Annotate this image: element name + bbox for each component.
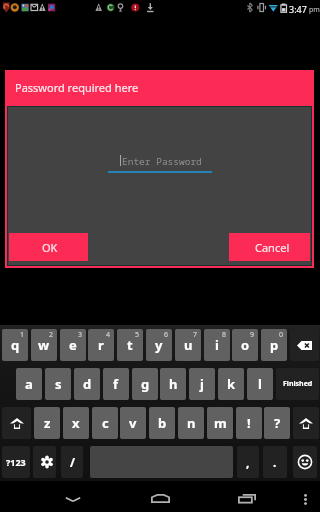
staticText: b (158, 414, 167, 432)
button[interactable]: w (31, 329, 57, 361)
staticText: i (215, 336, 219, 354)
button[interactable]: i (204, 329, 230, 361)
staticText: x (72, 414, 80, 432)
button[interactable]: c (92, 407, 118, 439)
button[interactable]: p (261, 329, 287, 361)
button[interactable]: g (132, 368, 158, 400)
button[interactable]: Finished (276, 368, 319, 400)
staticText: OK (42, 240, 58, 255)
staticText: r (98, 336, 104, 354)
staticText: 9 (250, 330, 255, 340)
staticText: s (55, 375, 62, 393)
staticText: 2 (49, 330, 54, 340)
button[interactable]: z (34, 407, 60, 439)
button[interactable]: e (60, 329, 86, 361)
staticText: z (44, 414, 51, 432)
staticText: / (70, 454, 75, 470)
staticText: q (11, 336, 20, 354)
staticText: Password required here (15, 80, 139, 95)
button[interactable]: . (263, 446, 287, 478)
button[interactable]: v (120, 407, 146, 439)
button[interactable]: l (247, 368, 273, 400)
button[interactable]: a (16, 368, 42, 400)
staticText: m (214, 414, 227, 432)
staticText: . (273, 454, 277, 470)
staticText: h (169, 375, 178, 393)
button[interactable]: Recents (223, 481, 271, 512)
button[interactable]: u (175, 329, 201, 361)
button[interactable]: Backspace (290, 329, 319, 361)
button[interactable]: s (45, 368, 71, 400)
staticText: Enter Password (122, 155, 202, 168)
button[interactable]: n (178, 407, 204, 439)
button[interactable]: More options (289, 481, 320, 512)
staticText: j (200, 375, 204, 393)
button[interactable]: f (103, 368, 129, 400)
staticText: pm (309, 5, 320, 15)
staticText: y (155, 336, 163, 354)
button[interactable]: Emoji (293, 446, 317, 478)
staticText: e (69, 336, 77, 354)
staticText: a (25, 375, 33, 393)
button[interactable]: x (63, 407, 89, 439)
staticText: u (184, 336, 193, 354)
staticText: Cancel (255, 240, 290, 255)
staticText: 8 (222, 330, 227, 340)
button[interactable]: t (117, 329, 143, 361)
staticText: Finished (283, 379, 313, 389)
staticText: v (129, 414, 137, 432)
staticText: ?123 (6, 456, 26, 468)
staticText: d (83, 375, 92, 393)
button[interactable]: ? (264, 407, 290, 439)
button[interactable]: j (189, 368, 215, 400)
staticText: w (38, 336, 50, 354)
button[interactable]: b (149, 407, 175, 439)
button[interactable]: d (74, 368, 100, 400)
button[interactable]: Shift (293, 407, 319, 439)
staticText: n (187, 414, 196, 432)
button[interactable]: h (160, 368, 186, 400)
staticText: f (113, 375, 119, 393)
staticText: 3 (78, 330, 83, 340)
button[interactable]: Cancel (229, 233, 310, 261)
staticText: 6 (164, 330, 169, 340)
staticText: 7 (193, 330, 198, 340)
button[interactable]: m (207, 407, 233, 439)
button[interactable]: Hide keyboard (49, 481, 97, 512)
button[interactable]: Settings (33, 446, 56, 478)
staticText: k (227, 375, 236, 393)
staticText: ! (247, 414, 251, 432)
staticText: g (141, 375, 150, 393)
staticText: o (241, 336, 250, 354)
button[interactable]: q (2, 329, 28, 361)
staticText: l (258, 375, 262, 393)
staticText: c (102, 414, 109, 432)
staticText: 5 (135, 330, 140, 340)
staticText: 4 (106, 330, 111, 340)
button[interactable]: / (61, 446, 83, 478)
button[interactable]: ! (236, 407, 262, 439)
button[interactable]: OK (9, 233, 88, 261)
staticText: p (270, 336, 279, 354)
staticText: t (127, 336, 133, 354)
button[interactable]: ?123 (2, 446, 30, 478)
staticText: 3:47 (289, 3, 307, 15)
button[interactable]: Shift (2, 407, 31, 439)
staticText: 0 (279, 330, 284, 340)
button[interactable]: Home (136, 481, 184, 512)
staticText: 1 (20, 330, 25, 340)
staticText: , (246, 454, 250, 470)
button[interactable]: o (232, 329, 258, 361)
button[interactable]: , (237, 446, 259, 478)
button[interactable]: k (218, 368, 244, 400)
staticText: ? (274, 414, 281, 432)
button[interactable]: r (88, 329, 114, 361)
button[interactable]: y (146, 329, 172, 361)
